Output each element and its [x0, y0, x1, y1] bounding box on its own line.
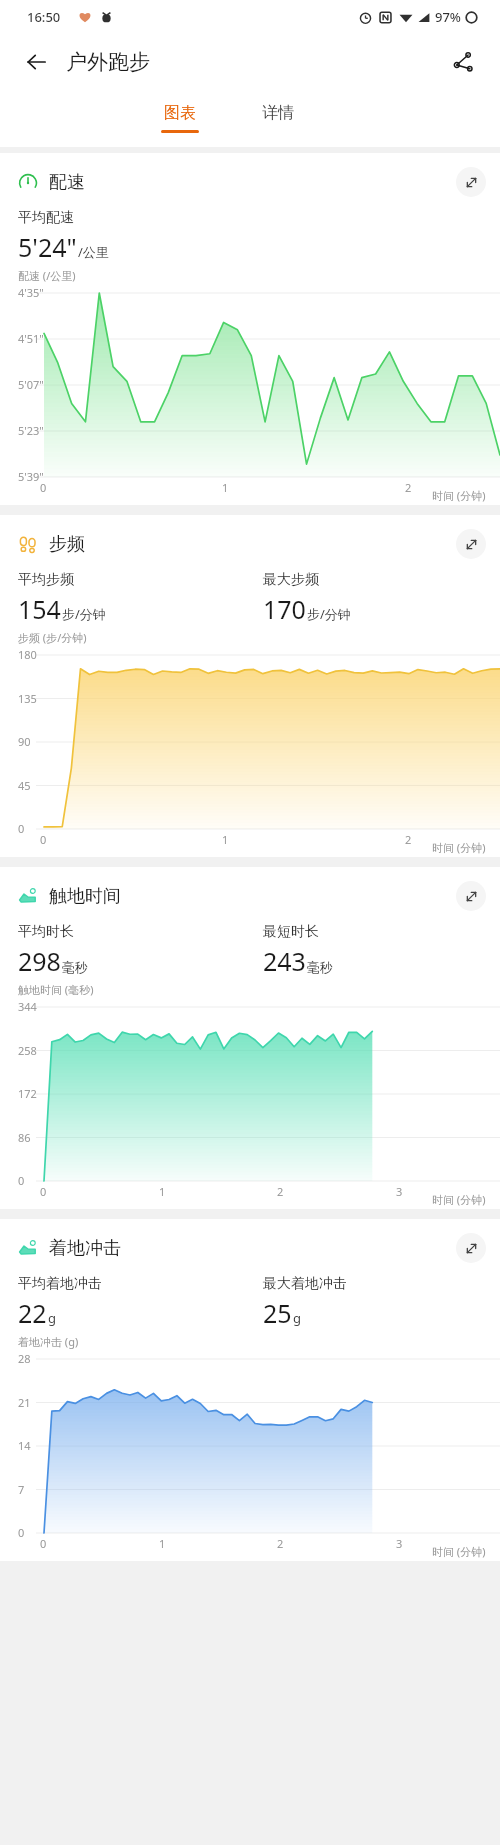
staticText: 16:50: [27, 8, 61, 26]
staticText: 平均配速: [18, 209, 74, 227]
button[interactable]: Expand: [456, 1233, 486, 1263]
button[interactable]: 图表: [145, 103, 215, 133]
button[interactable]: 详情: [243, 103, 313, 133]
staticText: 344: [18, 999, 37, 1014]
staticText: 时间 (分钟): [432, 488, 486, 503]
staticText: 最大着地冲击: [263, 1275, 347, 1293]
staticText: 258: [18, 1043, 37, 1058]
staticText: /公里: [78, 243, 109, 261]
staticText: 最大步频: [263, 571, 319, 589]
staticText: 时间 (分钟): [432, 1544, 486, 1559]
staticText: 5'24": [18, 230, 77, 264]
staticText: 0: [18, 821, 25, 836]
staticText: 298: [18, 944, 61, 978]
staticText: 0: [40, 1184, 47, 1199]
staticText: 平均步频: [18, 571, 74, 589]
staticText: 7: [18, 1482, 25, 1497]
button[interactable]: Share: [444, 43, 482, 81]
staticText: 0: [18, 1525, 25, 1540]
staticText: 97%: [435, 8, 461, 26]
staticText: 1: [159, 1184, 166, 1199]
staticText: 5'07": [18, 377, 44, 392]
staticText: 180: [18, 647, 37, 662]
staticText: 平均时长: [18, 923, 74, 941]
staticText: 3: [396, 1536, 403, 1551]
staticText: 1: [222, 480, 229, 495]
staticText: 步频: [49, 533, 85, 556]
staticText: 触地时间 (毫秒): [18, 982, 94, 997]
staticText: g: [293, 1309, 301, 1327]
staticText: 45: [18, 778, 31, 793]
staticText: 135: [18, 691, 37, 706]
staticText: 2: [277, 1184, 284, 1199]
staticText: 5'39": [18, 469, 44, 484]
staticText: 1: [222, 832, 229, 847]
staticText: 触地时间: [49, 885, 121, 908]
staticText: 22: [18, 1296, 47, 1330]
staticText: 平均着地冲击: [18, 1275, 102, 1293]
button[interactable]: Expand: [456, 167, 486, 197]
staticText: 图表: [164, 103, 196, 123]
staticText: 步/分钟: [307, 605, 351, 623]
staticText: 着地冲击 (g): [18, 1334, 79, 1349]
staticText: 14: [18, 1438, 31, 1453]
staticText: 1: [159, 1536, 166, 1551]
staticText: 154: [18, 592, 61, 626]
staticText: 步频 (步/分钟): [18, 630, 87, 645]
staticText: 0: [18, 1173, 25, 1188]
staticText: 28: [18, 1351, 31, 1366]
staticText: 4'51": [18, 331, 44, 346]
staticText: 配速: [49, 171, 85, 194]
staticText: 21: [18, 1395, 31, 1410]
staticText: 4'35": [18, 285, 44, 300]
staticText: g: [48, 1309, 56, 1327]
staticText: 时间 (分钟): [432, 840, 486, 855]
staticText: 2: [277, 1536, 284, 1551]
staticText: 170: [263, 592, 306, 626]
staticText: 步/分钟: [62, 605, 106, 623]
staticText: 毫秒: [307, 959, 333, 975]
staticText: 243: [263, 944, 306, 978]
staticText: 着地冲击: [49, 1237, 121, 1260]
staticText: 86: [18, 1130, 31, 1145]
staticText: 最短时长: [263, 923, 319, 941]
staticText: 户外跑步: [66, 49, 150, 75]
staticText: 0: [40, 832, 47, 847]
staticText: 25: [263, 1296, 292, 1330]
staticText: 毫秒: [62, 959, 88, 975]
button[interactable]: Back: [18, 43, 56, 81]
staticText: 3: [396, 1184, 403, 1199]
button[interactable]: Expand: [456, 881, 486, 911]
staticText: 172: [18, 1086, 37, 1101]
staticText: 2: [405, 832, 412, 847]
staticText: 5'23": [18, 423, 44, 438]
staticText: 90: [18, 734, 31, 749]
staticText: 0: [40, 480, 47, 495]
button[interactable]: Expand: [456, 529, 486, 559]
staticText: 详情: [262, 103, 294, 123]
staticText: 时间 (分钟): [432, 1192, 486, 1207]
staticText: 0: [40, 1536, 47, 1551]
staticText: 配速 (/公里): [18, 268, 76, 283]
staticText: 2: [405, 480, 412, 495]
